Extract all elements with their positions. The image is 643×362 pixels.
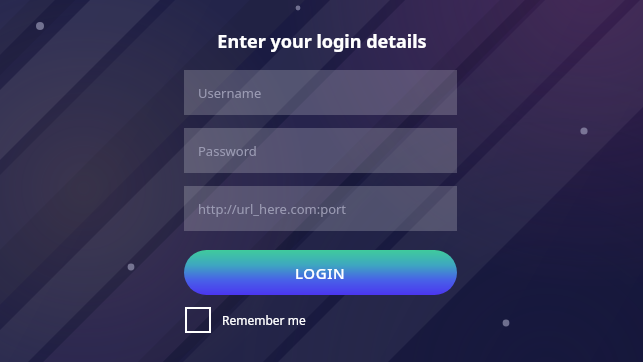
staticText: Remember me (222, 312, 306, 328)
button[interactable]: LOGIN (184, 250, 457, 295)
staticText: Username (198, 84, 262, 102)
staticText: http://url_here.com:port (198, 200, 347, 218)
staticText: Password (198, 142, 257, 160)
button[interactable]: http://url_here.com:port (184, 186, 457, 231)
button[interactable]: Remember me checkbox (185, 306, 306, 334)
button[interactable]: Username (184, 70, 457, 115)
staticText: Enter your login details (217, 29, 427, 54)
other: Remember me checkbox (185, 307, 211, 333)
staticText: LOGIN (295, 263, 346, 283)
button[interactable]: Password (184, 128, 457, 173)
